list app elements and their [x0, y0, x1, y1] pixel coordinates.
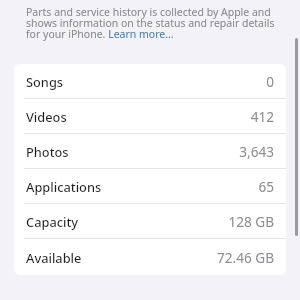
staticText: Songs	[26, 73, 64, 90]
button[interactable]: Applications	[14, 169, 286, 203]
button[interactable]: Videos	[14, 99, 286, 133]
staticText: 3,643	[239, 142, 274, 161]
staticText: Videos	[26, 108, 67, 125]
other: Scroll position	[295, 38, 298, 236]
staticText: 0	[266, 72, 274, 91]
button[interactable]: Parts and service history is collected b…	[26, 5, 276, 42]
staticText: 128 GB	[228, 212, 274, 231]
staticText: 412	[250, 107, 274, 126]
staticText: Capacity	[26, 213, 79, 230]
button[interactable]: Photos	[14, 134, 286, 168]
button[interactable]: Capacity	[14, 204, 286, 238]
staticText: Applications	[26, 178, 102, 195]
staticText: Available	[26, 249, 82, 266]
staticText: 72.46 GB	[216, 248, 274, 267]
button[interactable]: Available	[14, 239, 286, 275]
staticText: Photos	[26, 143, 69, 160]
staticText: 65	[258, 177, 274, 196]
button[interactable]: Songs	[14, 64, 286, 98]
staticText: Parts and service history is collected b…	[26, 5, 276, 42]
